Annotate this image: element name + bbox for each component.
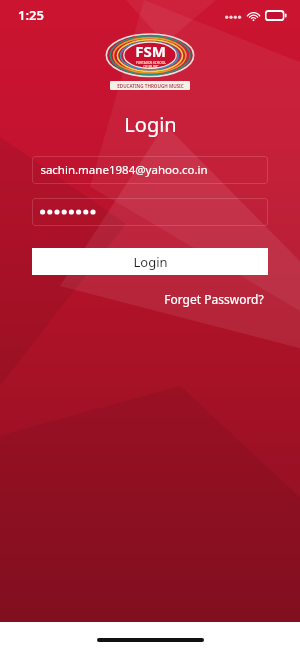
staticText: OF MUSIC bbox=[143, 65, 159, 69]
staticText: FSM bbox=[135, 41, 166, 61]
staticText: Login bbox=[124, 111, 177, 138]
button[interactable]: Login bbox=[32, 248, 268, 275]
staticText: EDUCATING THROUGH MUSIC bbox=[117, 83, 184, 89]
staticText: 1:25 bbox=[18, 6, 44, 24]
button[interactable]: sachin.mane1984@yahoo.co.in bbox=[32, 156, 268, 184]
staticText: Login bbox=[133, 253, 168, 271]
button[interactable] bbox=[32, 198, 268, 226]
staticText: Forget Password? bbox=[164, 291, 264, 307]
button[interactable]: Forget Password? bbox=[160, 287, 268, 311]
staticText: sachin.mane1984@yahoo.co.in bbox=[40, 162, 208, 178]
staticText: FURTADOS SCHOOL bbox=[136, 61, 166, 65]
